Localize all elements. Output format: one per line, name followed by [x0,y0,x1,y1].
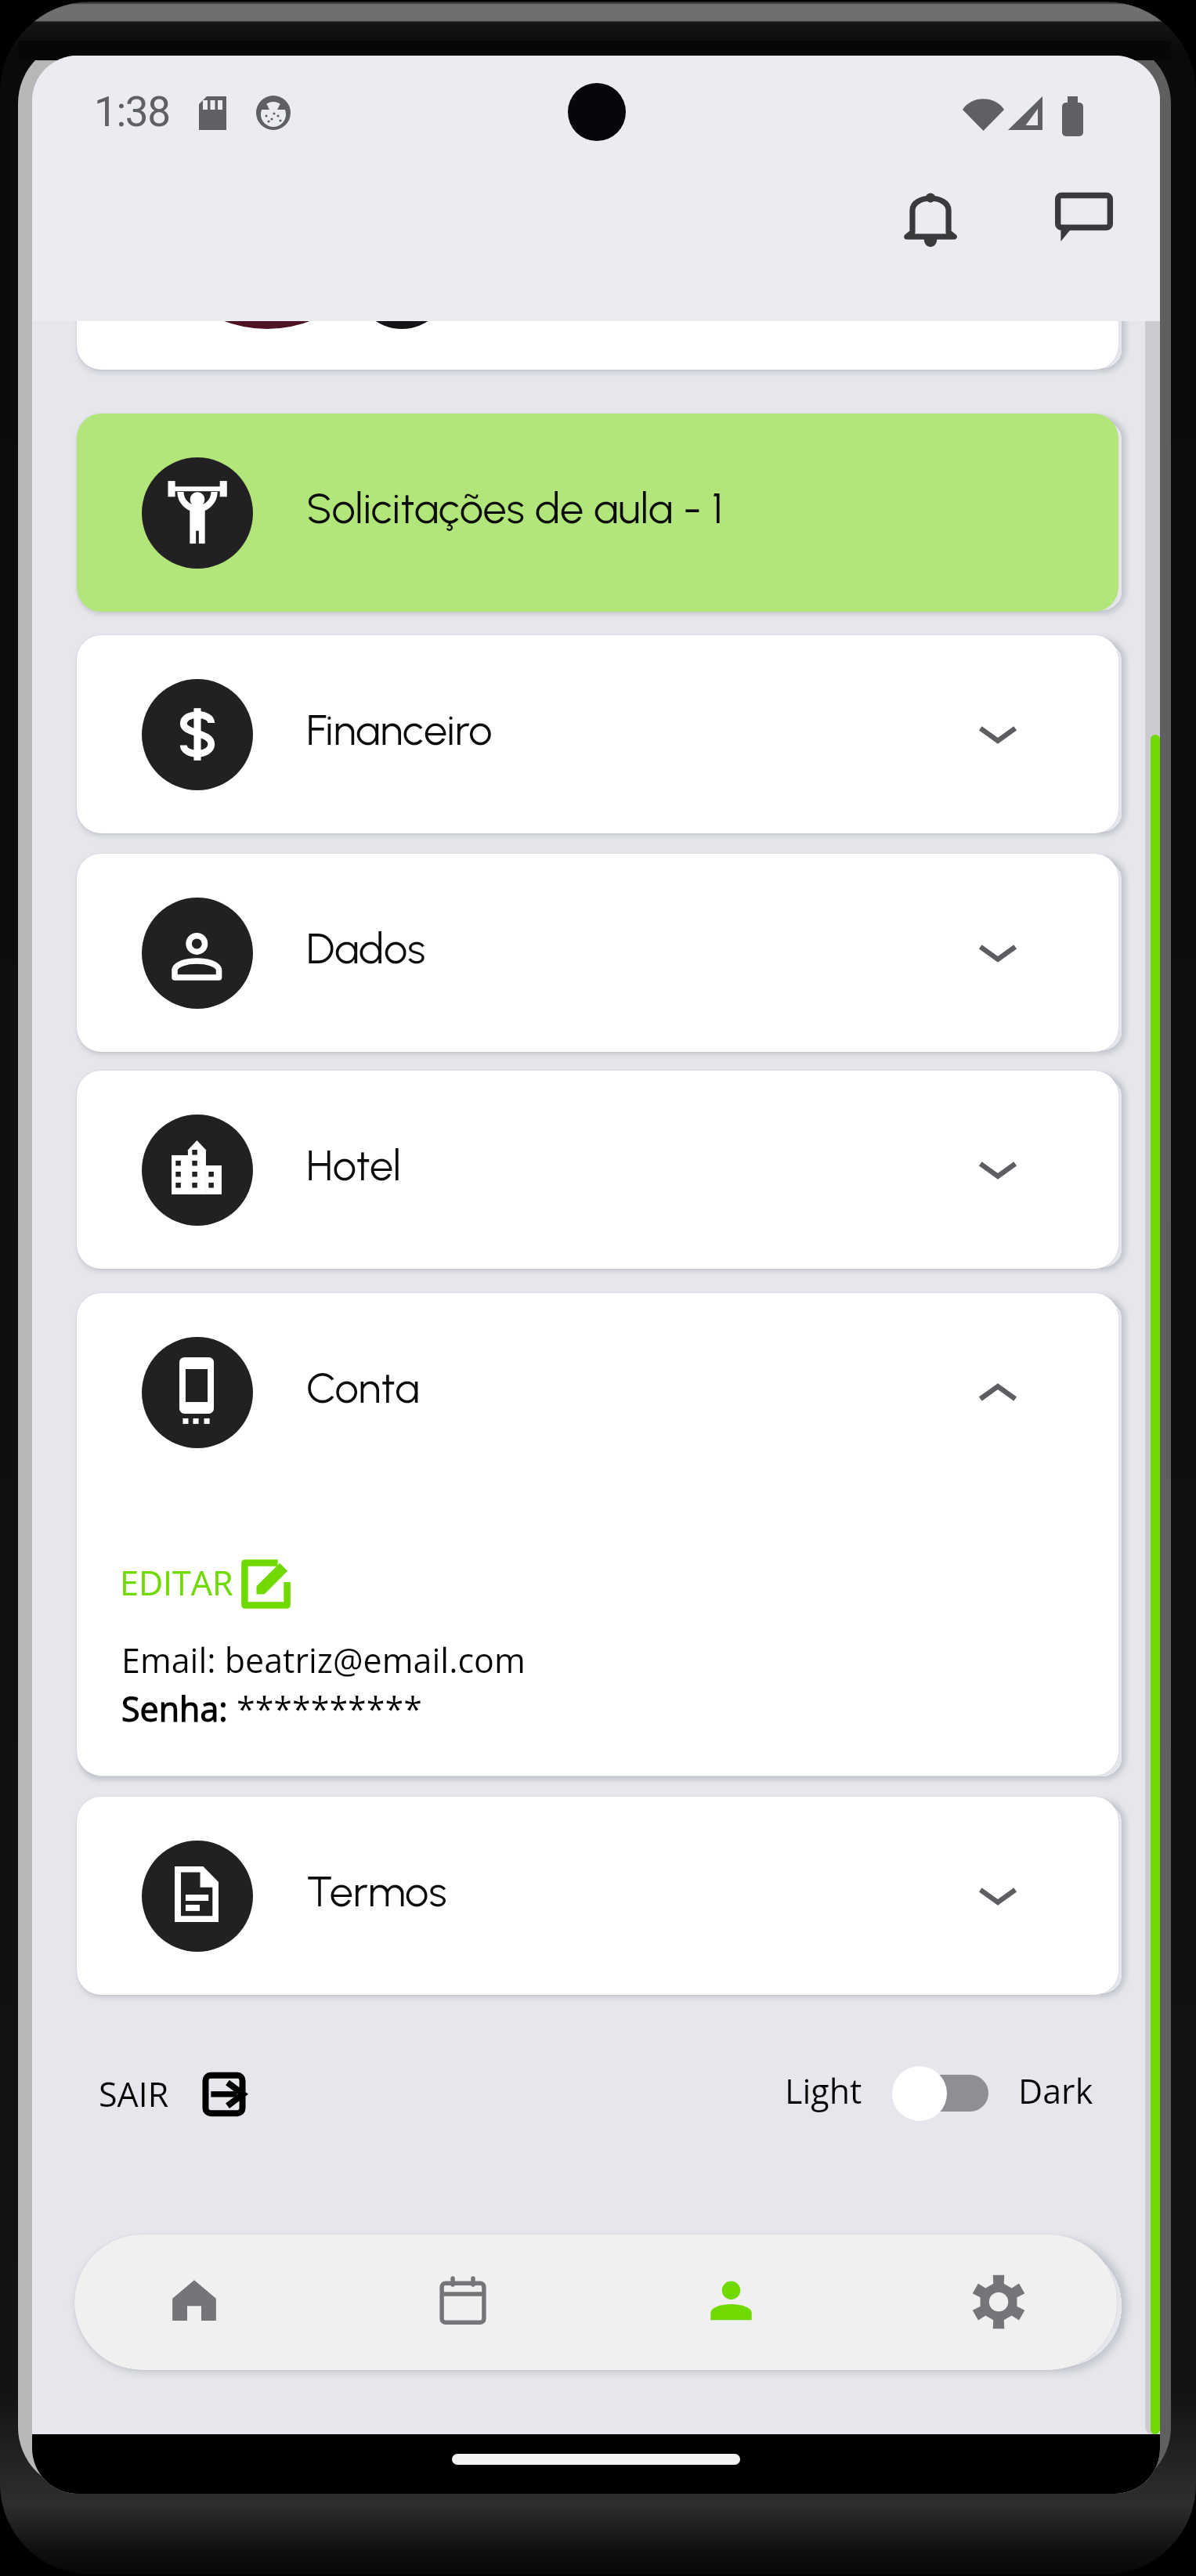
staticText: Conta [306,1363,420,1414]
button[interactable]: Inicio [127,2235,262,2370]
button[interactable]: SAIR [89,2058,300,2128]
staticText: EDITAR [120,1559,233,1606]
button[interactable]: Configuracoes [931,2235,1066,2370]
button[interactable]: Conta [77,1293,1118,1491]
staticText: SAIR [99,2071,169,2117]
button[interactable]: Alternar tema [892,2066,990,2121]
staticText: ********** [237,1685,422,1732]
staticText: Light [785,2068,862,2114]
button[interactable]: Mensagens [1014,145,1154,286]
button[interactable]: EDITAR [112,1548,378,1619]
staticText: Hotel [306,1140,402,1191]
staticText: Solicitações de aula - 1 [306,483,724,534]
button[interactable]: Solicitações de aula - 1 [77,414,1118,612]
button[interactable]: Perfil [663,2235,798,2370]
staticText: 1:38 [94,88,170,136]
button[interactable]: Dados [77,854,1118,1052]
staticText: Email: beatriz@email.com [121,1637,526,1683]
button[interactable]: Notificacoes [860,146,1001,287]
staticText: Dados [306,923,426,974]
button[interactable]: Termos [77,1797,1118,1995]
button[interactable]: Agenda [396,2235,530,2370]
staticText: Termos [306,1866,447,1917]
staticText: Financeiro [306,705,493,756]
button[interactable]: Financeiro [77,635,1118,833]
staticText: Senha: [121,1685,237,1732]
staticText: Dark [1018,2068,1093,2114]
button[interactable]: Hotel [77,1071,1118,1269]
